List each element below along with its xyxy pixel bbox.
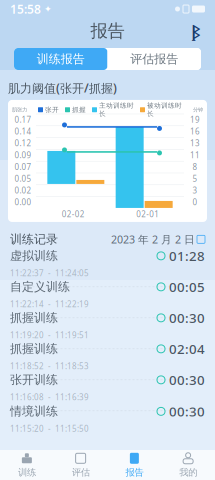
button[interactable]: 自定义训练 [0,280,215,311]
staticText: 02-01 [136,209,159,219]
staticText: 0.14 [14,126,31,137]
staticText: 0.07 [14,161,31,172]
staticText: 0.00 [14,197,31,207]
staticText: ᛒ [191,20,200,42]
staticText: 报告 [90,20,124,42]
staticText: 自定义训练 [10,279,70,294]
staticText: 11 [190,150,200,160]
button[interactable]: 张开训练 [0,373,215,404]
staticText: 11:16:08 - 11:16:39 [10,392,89,402]
staticText: 情境训练 [10,404,58,419]
staticText: 00:30 [169,402,205,420]
staticText: 训练报告 [37,52,85,66]
staticText: 13 [190,138,200,148]
staticText: 虚拟训练 [10,248,58,263]
staticText: 报告 [125,467,143,478]
button[interactable]: 评估 [54,450,108,480]
staticText: 00:30 [169,309,205,327]
staticText: 0 [192,197,197,207]
staticText: 02-02 [62,209,85,219]
staticText: 训练记录 [10,232,58,247]
staticText: 我的 [179,467,197,478]
staticText: 张开训练 [10,372,58,387]
button[interactable]: 训练报告 [14,48,107,70]
staticText: 19 [190,114,200,125]
staticText: 15:58 [10,1,41,17]
staticText: 肌张力 [12,106,27,113]
button[interactable]: 报告 [107,450,161,480]
staticText: 被动训练时长 [147,101,182,118]
staticText: 11:15:20 - 11:15:50 [10,423,89,434]
staticText: 00:30 [169,371,205,389]
button[interactable]: 训练 [0,450,54,480]
staticText: 01:28 [169,247,205,265]
staticText: 分钟 [193,106,203,113]
staticText: 训练 [18,467,36,478]
staticText: 评估报告 [130,52,178,66]
staticText: 11:18:52 - 11:18:53 [10,361,89,371]
staticText: 11:19:20 - 11:19:51 [10,330,89,340]
staticText: 抓握 [72,106,86,114]
staticText: 0.05 [14,173,31,184]
button[interactable]: 抓握训练 [0,342,215,373]
staticText: 0.02 [14,185,31,196]
staticText: 0.12 [14,138,31,148]
staticText: 5 [192,173,197,184]
staticText: 评估 [72,467,90,478]
staticText: 张开 [45,106,59,114]
button[interactable]: 我的 [161,450,215,480]
staticText: 0.09 [14,150,31,160]
button[interactable]: 评估报告 [107,48,201,70]
staticText: ✦ [44,4,52,14]
button[interactable]: 情境训练 [0,404,215,435]
staticText: 抓握训练 [10,310,58,325]
button[interactable]: 2023 年 2 月 2 日 [111,232,205,246]
button[interactable]: 抓握训练 [0,311,215,342]
staticText: 3 [192,185,197,196]
staticText: 8 [192,161,197,172]
staticText: 11:22:14 - 11:22:19 [10,299,89,309]
staticText: 抓握训练 [10,341,58,356]
button[interactable]: 虚拟训练 [0,249,215,280]
staticText: 00:05 [169,278,205,296]
staticText: 16 [190,126,200,137]
staticText: 肌力阈值(张开/抓握) [8,80,117,96]
button[interactable]: Bluetooth [185,20,207,42]
staticText: 主动训练时长 [99,101,134,118]
staticText: 0.17 [14,114,31,125]
staticText: 11:22:37 - 11:24:05 [10,268,89,278]
staticText: 2023 年 2 月 2 日 [111,232,195,246]
staticText: 02:04 [169,340,205,358]
